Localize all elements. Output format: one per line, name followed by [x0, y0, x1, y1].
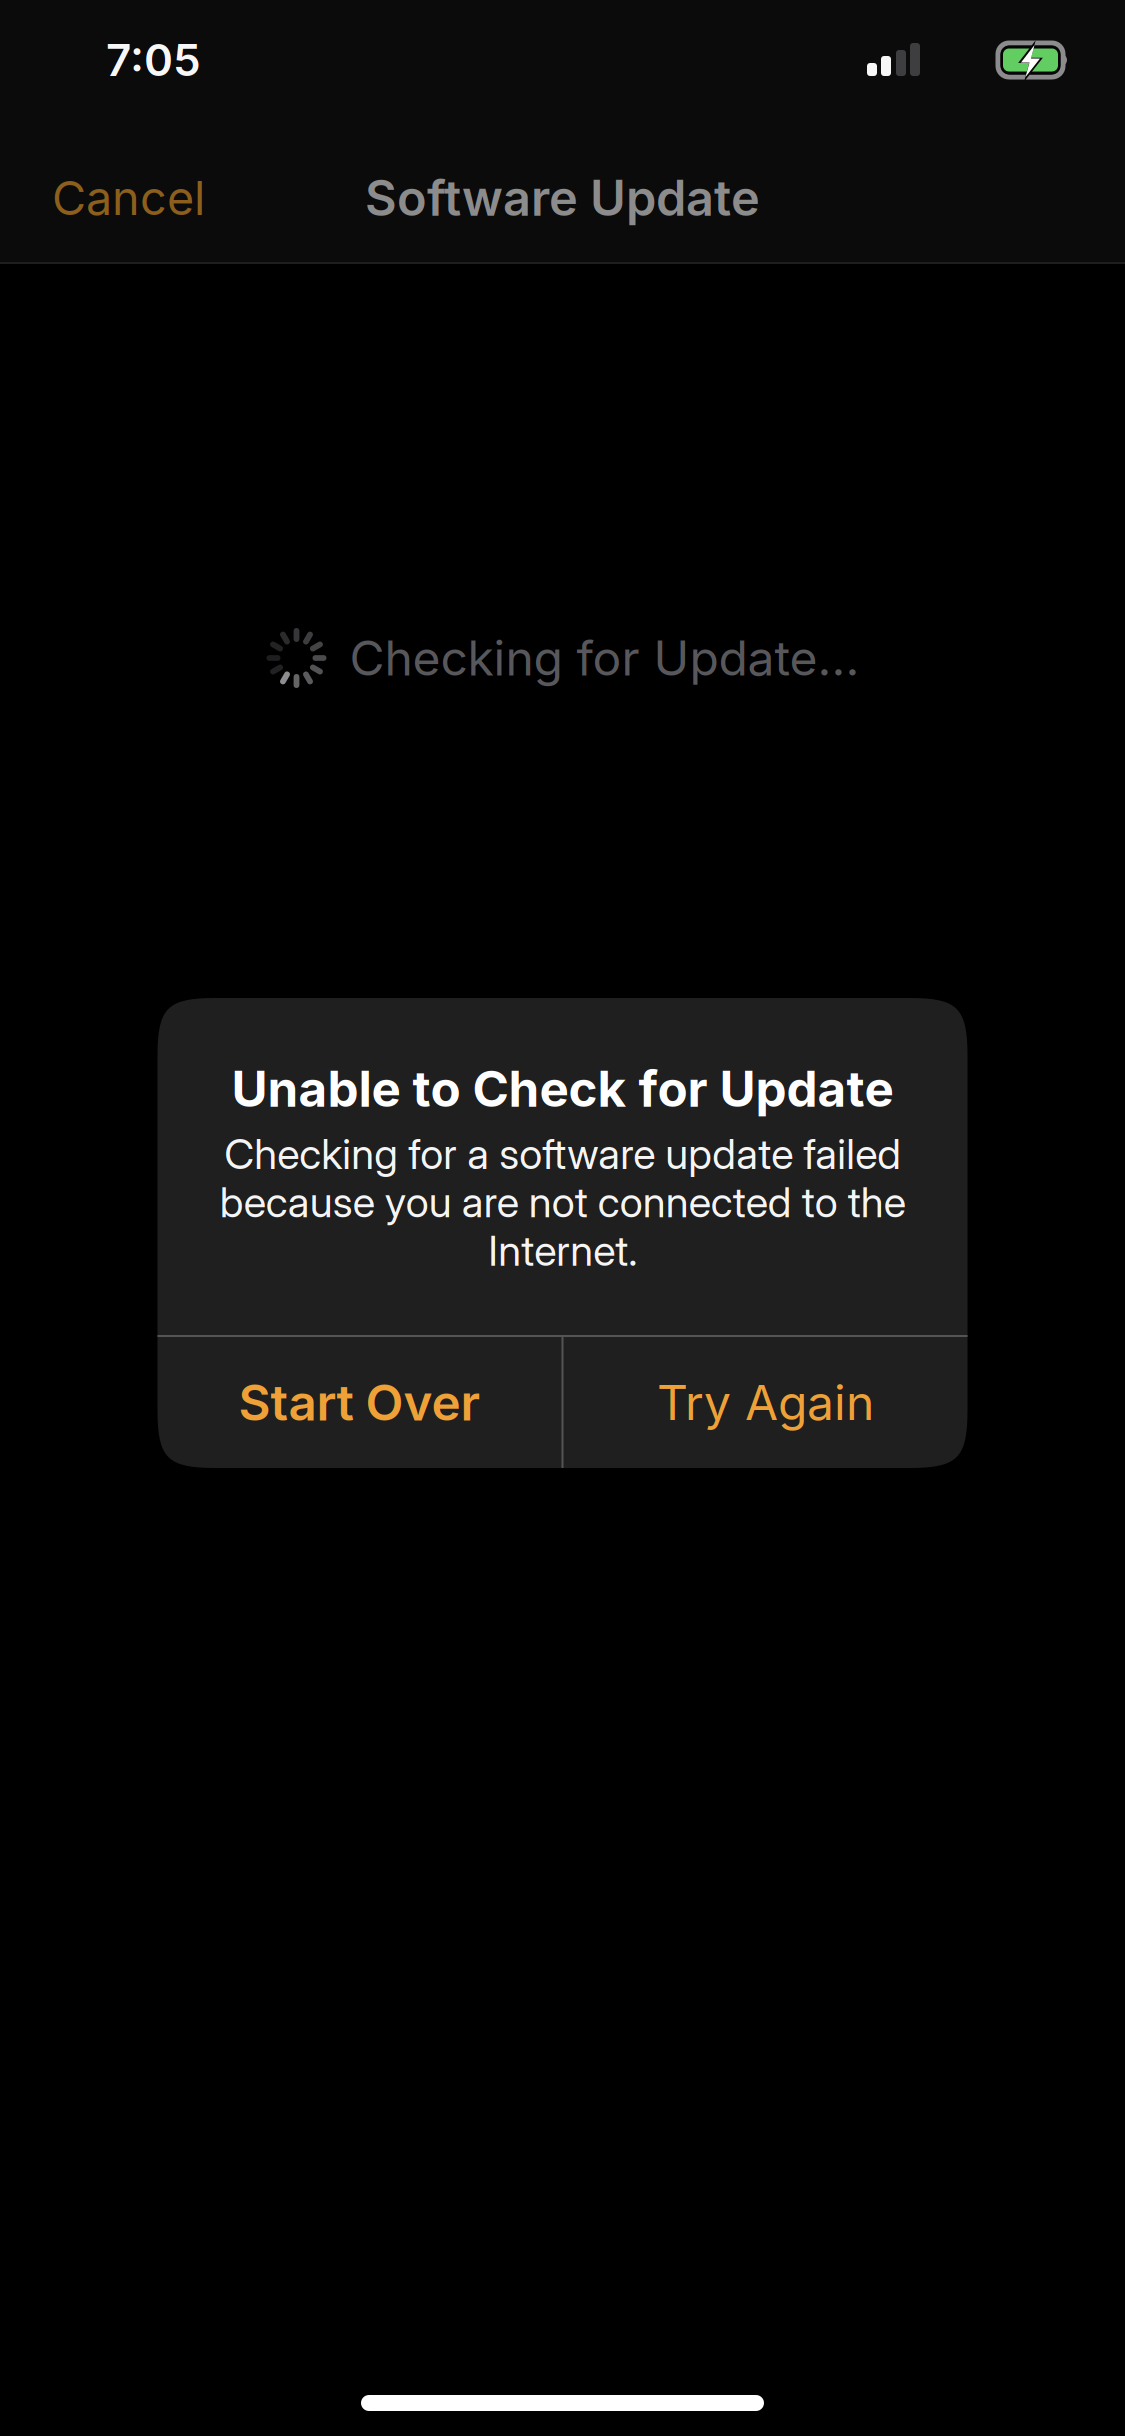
staticText: Checking for Update...: [349, 629, 859, 687]
staticText: Software Update: [365, 169, 760, 227]
staticText: Cancel: [52, 170, 205, 226]
staticText: Unable to Check for Update: [231, 1059, 893, 1119]
staticText: Checking for a software update failed be…: [219, 1129, 905, 1276]
button[interactable]: Cancel: [0, 132, 235, 264]
staticText: 7:05: [106, 33, 201, 87]
button[interactable]: Start Over: [157, 1337, 561, 1468]
staticText: Try Again: [657, 1373, 874, 1432]
staticText: Start Over: [238, 1373, 480, 1432]
button[interactable]: Try Again: [563, 1337, 967, 1468]
